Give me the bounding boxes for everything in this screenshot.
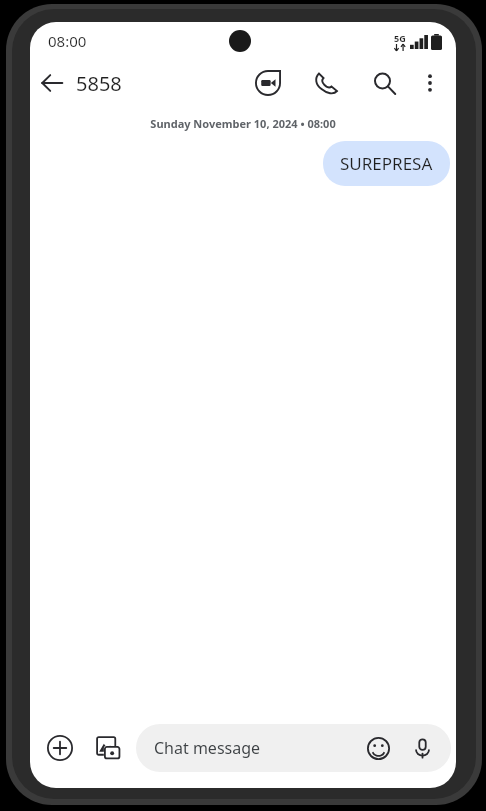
button[interactable]: Back	[30, 61, 74, 105]
staticText: 5G	[394, 32, 406, 44]
button[interactable]: Gallery	[86, 726, 130, 770]
button[interactable]: Video call	[246, 61, 290, 105]
staticText: Sunday November 10, 2024 • 08:00	[30, 116, 456, 131]
button[interactable]: SUREPRESA	[323, 141, 450, 186]
staticText: 08:00	[48, 31, 87, 51]
button[interactable]: Voice message	[405, 731, 439, 765]
button[interactable]: More options	[410, 63, 450, 103]
button[interactable]: 5858	[76, 70, 122, 97]
button[interactable]: Chat message	[136, 724, 451, 772]
button[interactable]: Emoji	[361, 731, 395, 765]
button[interactable]: Search	[362, 61, 406, 105]
staticText: SUREPRESA	[340, 152, 433, 175]
button[interactable]: Call	[304, 61, 348, 105]
button[interactable]: Add	[38, 726, 82, 770]
staticText: Chat message	[154, 737, 261, 759]
